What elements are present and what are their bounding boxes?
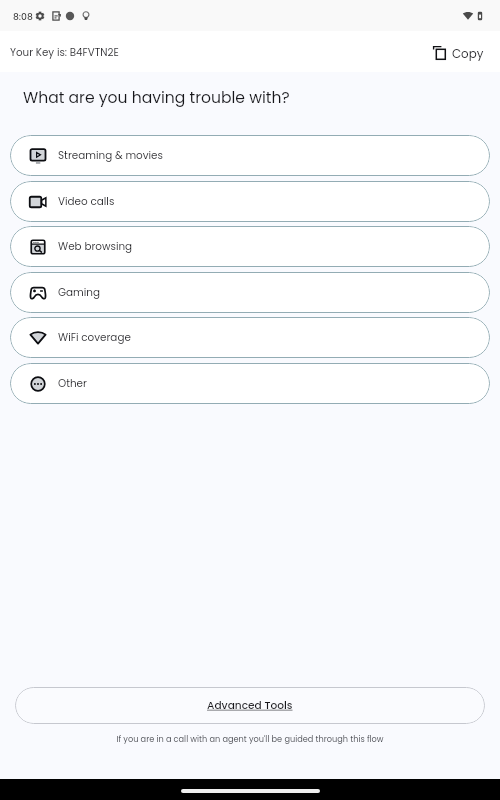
staticText: Copy	[452, 46, 484, 63]
staticText: Video calls	[58, 194, 115, 209]
staticText: What are you having trouble with?	[23, 87, 290, 109]
staticText: Web browsing	[58, 239, 133, 254]
button[interactable]: Advanced Tools	[15, 687, 485, 724]
button[interactable]: Gaming	[10, 272, 490, 313]
button[interactable]: WiFi coverage	[10, 317, 490, 358]
button[interactable]: Web browsing	[10, 226, 490, 267]
staticText: Gaming	[58, 285, 101, 300]
staticText: Your Key is: B4FVTN2E	[10, 45, 119, 59]
staticText: Advanced Tools	[207, 698, 293, 713]
staticText: 8:08	[13, 10, 33, 23]
staticText: Other	[58, 376, 87, 391]
staticText: WiFi coverage	[58, 330, 131, 345]
staticText: Streaming & movies	[58, 148, 163, 163]
button[interactable]: Copy	[432, 31, 483, 72]
button[interactable]: Streaming & movies	[10, 135, 490, 176]
button[interactable]: Other	[10, 363, 490, 404]
button[interactable]: Video calls	[10, 181, 490, 222]
staticText: If you are in a call with an agent you'l…	[0, 733, 500, 744]
